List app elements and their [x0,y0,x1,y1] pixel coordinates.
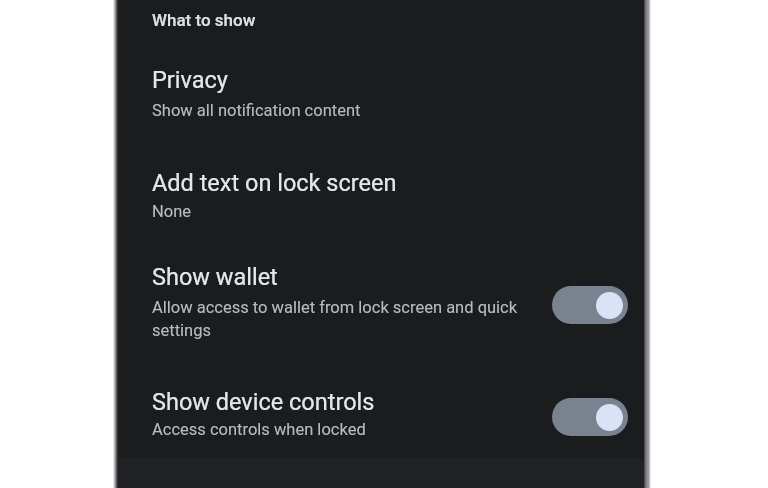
button[interactable] [552,286,628,324]
button[interactable]: Privacy [118,44,644,140]
staticText: Privacy [152,66,228,94]
staticText: Show all notification content [152,101,361,120]
button[interactable]: Show wallet [118,244,644,368]
staticText: Allow access to wallet from lock screen … [152,298,518,340]
staticText: Show device controls [152,388,375,416]
button[interactable]: Add text on lock screen [118,140,644,244]
staticText: None [152,202,192,221]
button[interactable]: Show device controls [118,368,644,458]
staticText: Show wallet [152,263,278,291]
staticText: What to show [152,10,256,30]
button[interactable] [552,398,628,436]
staticText: Access controls when locked [152,420,366,439]
staticText: Add text on lock screen [152,169,397,197]
